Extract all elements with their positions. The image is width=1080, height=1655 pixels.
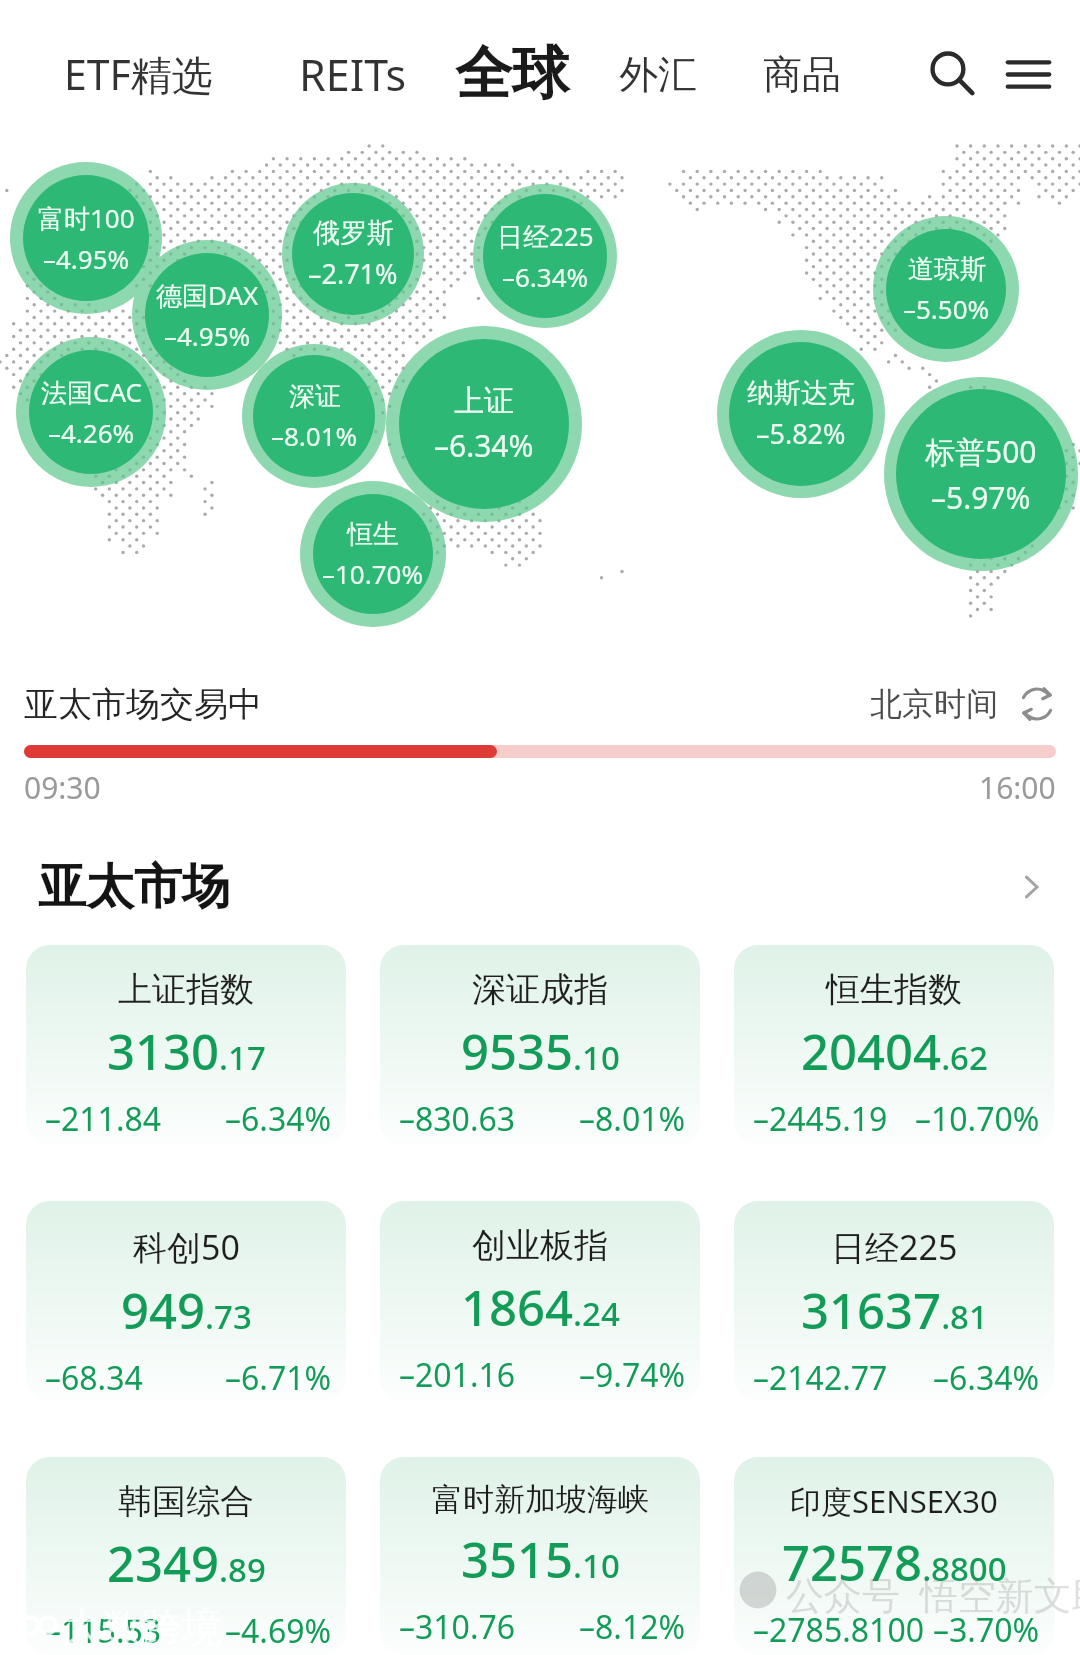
button[interactable]: 标普500: [896, 389, 1066, 559]
staticText: 法国CAC: [41, 374, 142, 410]
button[interactable]: 印度SENSEX30: [734, 1457, 1054, 1655]
staticText: –8.01%: [271, 418, 358, 453]
button[interactable]: 恒生指数: [734, 945, 1054, 1145]
staticText: –5.82%: [756, 415, 846, 452]
button[interactable]: ETF精选: [64, 46, 213, 102]
button[interactable]: 道琼斯: [886, 229, 1006, 349]
staticText: –6.34%: [434, 425, 534, 466]
button[interactable]: 上证: [399, 339, 569, 509]
button[interactable]: 日经225: [483, 194, 607, 318]
staticText: –4.95%: [164, 318, 251, 353]
staticText: 3515.10: [461, 1526, 620, 1593]
staticText: 日经225: [497, 218, 594, 254]
staticText: 3130.17: [107, 1018, 266, 1085]
staticText: 9535.10: [461, 1018, 620, 1085]
staticText: 恒生: [347, 518, 399, 551]
button[interactable]: REITs: [299, 45, 407, 104]
staticText: 科创50: [133, 1224, 240, 1270]
button[interactable]: 商品: [763, 50, 841, 99]
staticText: 富时100: [38, 200, 135, 236]
button[interactable]: 纳斯达克: [729, 342, 873, 486]
staticText: 亚太市场交易中: [24, 683, 262, 726]
staticText: 深证成指: [472, 968, 608, 1011]
staticText: 日经225: [831, 1224, 958, 1270]
button[interactable]: 创业板指: [380, 1201, 700, 1401]
staticText: –4.95%: [43, 241, 130, 276]
staticText: –6.34%: [502, 259, 589, 294]
staticText: –5.97%: [931, 477, 1031, 518]
staticText: –2.71%: [308, 255, 398, 292]
button[interactable]: Refresh: [1014, 681, 1060, 727]
staticText: –211.84: [45, 1097, 162, 1141]
staticText: 09:30: [24, 767, 101, 808]
button[interactable]: 科创50: [26, 1201, 346, 1401]
staticText: 72578.8800: [782, 1529, 1007, 1596]
staticText: 韩国综合: [118, 1480, 254, 1523]
staticText: 深证: [289, 380, 341, 413]
staticText: –4.69%: [225, 1609, 332, 1653]
button[interactable]: 全球: [455, 38, 569, 110]
staticText: –310.76: [399, 1605, 516, 1649]
button[interactable]: 亚太市场: [38, 857, 1050, 917]
button[interactable]: 韩国综合: [26, 1457, 346, 1655]
button[interactable]: 深证: [253, 355, 375, 477]
staticText: 2349.89: [107, 1530, 266, 1597]
staticText: 上证: [454, 382, 514, 420]
staticText: 创业板指: [472, 1224, 608, 1267]
staticText: –2445.19: [753, 1097, 888, 1141]
staticText: 949.73: [121, 1277, 252, 1344]
staticText: –9.74%: [579, 1353, 686, 1397]
staticText: –115.53: [45, 1609, 162, 1653]
staticText: 德国DAX: [156, 277, 259, 313]
staticText: 标普500: [925, 431, 1037, 472]
staticText: –6.34%: [933, 1356, 1040, 1400]
staticText: 印度SENSEX30: [790, 1480, 998, 1522]
button[interactable]: 外汇: [619, 50, 697, 99]
staticText: –8.01%: [579, 1097, 686, 1141]
staticText: 俄罗斯: [313, 216, 394, 250]
staticText: 20404.62: [801, 1018, 988, 1085]
staticText: 16:00: [979, 767, 1056, 808]
staticText: 31637.81: [801, 1277, 988, 1344]
button[interactable]: 恒生: [313, 494, 433, 614]
staticText: –201.16: [399, 1353, 516, 1397]
button[interactable]: 日经225: [734, 1201, 1054, 1401]
staticText: –68.34: [45, 1356, 143, 1400]
staticText: –2785.8100: [753, 1608, 925, 1652]
staticText: –2142.77: [753, 1356, 888, 1400]
button[interactable]: 上证指数: [26, 945, 346, 1145]
button[interactable]: 富时新加坡海峡: [380, 1457, 700, 1655]
button[interactable]: 德国DAX: [145, 253, 269, 377]
staticText: –10.70%: [915, 1097, 1040, 1141]
staticText: –10.70%: [322, 556, 424, 591]
staticText: 纳斯达克: [747, 376, 855, 410]
staticText: –6.34%: [225, 1097, 332, 1141]
staticText: 北京时间: [870, 684, 998, 724]
staticText: 上证指数: [118, 968, 254, 1011]
staticText: 大数跨境: [62, 1602, 222, 1652]
staticText: –8.12%: [579, 1605, 686, 1649]
staticText: 富时新加坡海峡: [432, 1480, 649, 1519]
staticText: 1864.24: [461, 1274, 620, 1341]
button[interactable]: 深证成指: [380, 945, 700, 1145]
staticText: 恒生指数: [826, 968, 962, 1011]
button[interactable]: 俄罗斯: [292, 193, 414, 315]
staticText: –830.63: [399, 1097, 516, 1141]
staticText: –5.50%: [903, 291, 990, 326]
staticText: 公众号 悟空新文助: [786, 1568, 1080, 1620]
button[interactable]: 法国CAC: [29, 350, 153, 474]
button[interactable]: 富时100: [23, 175, 149, 301]
staticText: 亚太市场: [38, 857, 230, 917]
button[interactable]: Search: [921, 42, 985, 106]
staticText: 道琼斯: [908, 253, 986, 286]
staticText: –3.70%: [933, 1608, 1040, 1652]
staticText: –4.26%: [48, 415, 135, 450]
button[interactable]: Menu: [996, 42, 1060, 106]
staticText: –6.71%: [225, 1356, 332, 1400]
